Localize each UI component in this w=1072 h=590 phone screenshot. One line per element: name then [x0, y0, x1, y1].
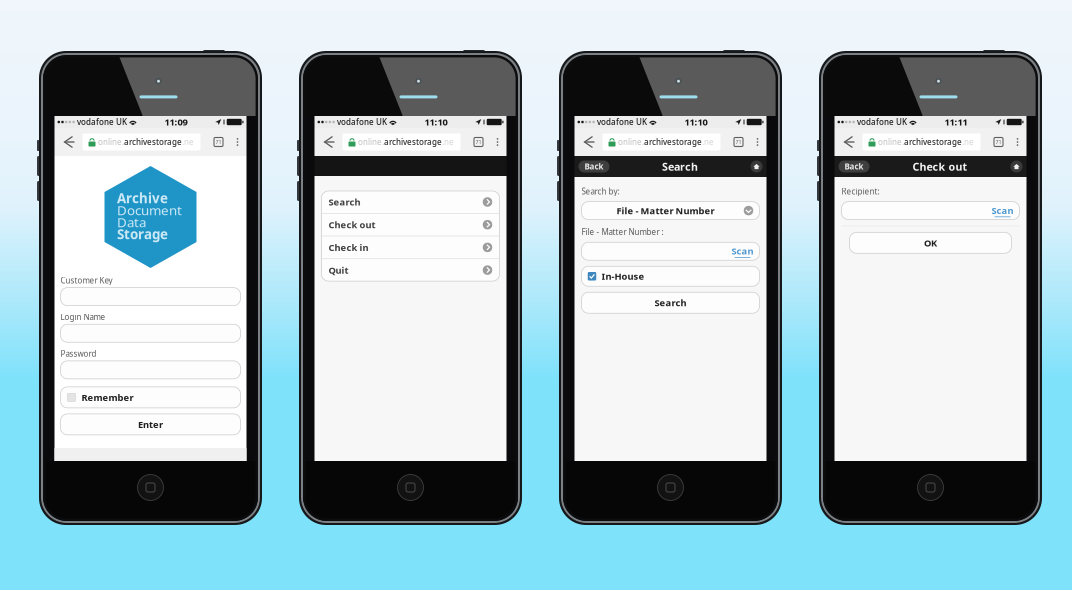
staticText: Back — [584, 161, 603, 172]
staticText: .ne — [702, 137, 714, 147]
staticText: In-House — [601, 270, 644, 282]
staticText: 11:09 — [165, 116, 188, 128]
button[interactable]: Remember — [60, 387, 240, 408]
staticText: Scan — [991, 204, 1013, 216]
staticText: archivestorage — [644, 137, 702, 147]
staticText: archivestorage — [384, 137, 442, 147]
staticText: Customer Key — [60, 275, 112, 286]
button[interactable]: More options — [489, 128, 505, 156]
button[interactable]: Tabs — [467, 128, 489, 156]
staticText: Search — [662, 159, 698, 174]
staticText: archivestorage — [124, 137, 182, 147]
staticText: Scan — [731, 245, 753, 257]
staticText: 71 — [475, 138, 481, 146]
button[interactable]: Home — [750, 160, 762, 172]
staticText: Enter — [138, 418, 163, 431]
staticText: .ne — [442, 137, 454, 147]
staticText: Search — [654, 297, 686, 309]
staticText: online. — [98, 137, 124, 147]
staticText: archivestorage — [904, 137, 962, 147]
button[interactable]: In-House — [581, 266, 759, 286]
staticText: Recipient: — [841, 186, 879, 197]
staticText: online. — [358, 137, 384, 147]
button[interactable]: Search — [321, 191, 499, 214]
button[interactable]: Back — [578, 160, 609, 172]
staticText: Quit — [328, 264, 348, 276]
staticText: Archive — [117, 189, 168, 207]
button[interactable]: More options — [229, 128, 245, 156]
staticText: vodafone UK — [335, 117, 387, 127]
button[interactable]: Scan — [731, 245, 753, 258]
staticText: Search — [328, 196, 360, 208]
staticText: 71 — [735, 138, 741, 146]
button[interactable]: Back — [838, 160, 869, 172]
staticText: Check in — [328, 241, 368, 254]
staticText: OK — [924, 237, 937, 249]
button[interactable]: Back — [574, 128, 602, 156]
button[interactable]: Tabs — [727, 128, 749, 156]
staticText: Check out — [912, 159, 967, 174]
staticText: File - Matter Number : — [581, 227, 663, 237]
staticText: Password — [60, 348, 96, 359]
staticText: File - Matter Number — [616, 204, 714, 217]
staticText: 71 — [995, 138, 1001, 146]
button[interactable]: Back — [54, 128, 82, 156]
button[interactable]: Quit — [321, 259, 499, 281]
staticText: Document — [117, 201, 182, 219]
staticText: Login Name — [60, 312, 105, 322]
staticText: 11:10 — [425, 116, 448, 128]
staticText: Data — [117, 213, 146, 231]
button[interactable]: Search — [581, 292, 759, 313]
button[interactable]: More options — [749, 128, 765, 156]
staticText: Search by: — [581, 186, 619, 197]
button[interactable]: Check out — [321, 214, 499, 236]
staticText: .ne — [182, 137, 194, 147]
staticText: 71 — [215, 138, 221, 146]
button[interactable]: OK — [849, 232, 1011, 253]
button[interactable]: Check in — [321, 236, 499, 259]
button[interactable]: Tabs — [987, 128, 1009, 156]
button[interactable]: More options — [1009, 128, 1025, 156]
button[interactable]: Back — [314, 128, 342, 156]
staticText: online. — [878, 137, 904, 147]
staticText: 11:11 — [945, 116, 968, 128]
staticText: .ne — [962, 137, 974, 147]
staticText: vodafone UK — [595, 117, 647, 127]
button[interactable]: Enter — [60, 414, 240, 435]
button[interactable]: Back — [834, 128, 862, 156]
staticText: Remember — [81, 391, 133, 404]
button[interactable]: File - Matter Number — [581, 202, 759, 220]
staticText: Storage — [117, 225, 168, 243]
staticText: Check out — [328, 218, 375, 231]
staticText: Back — [844, 161, 863, 172]
button[interactable]: Scan — [991, 204, 1013, 217]
button[interactable]: Home — [1010, 160, 1022, 172]
button[interactable]: Tabs — [207, 128, 229, 156]
staticText: vodafone UK — [75, 117, 127, 127]
staticText: 11:10 — [685, 116, 708, 128]
staticText: online. — [618, 137, 644, 147]
staticText: vodafone UK — [855, 117, 907, 127]
